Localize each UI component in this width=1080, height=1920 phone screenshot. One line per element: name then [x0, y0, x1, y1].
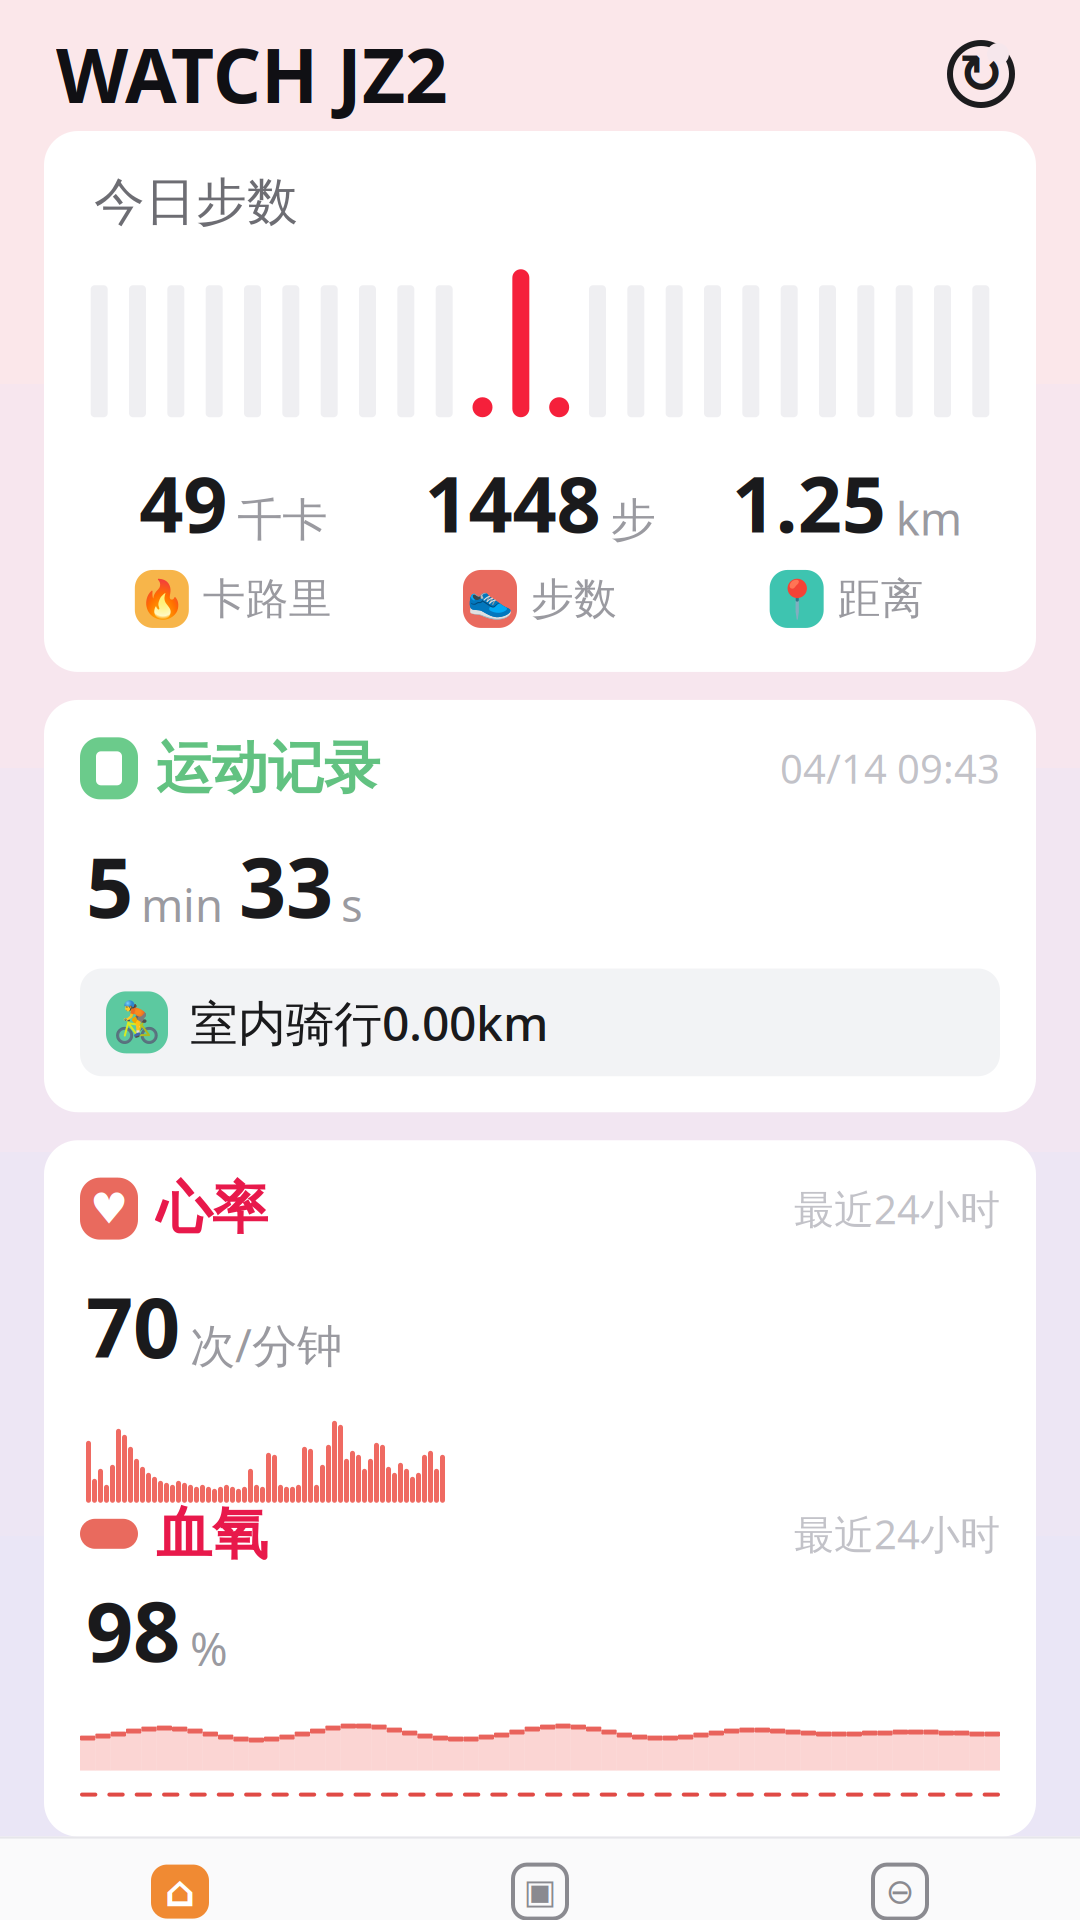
staticText: 血氧 [156, 1499, 268, 1568]
staticText: 📍 [774, 578, 820, 620]
button[interactable]: ⌂ [0, 1865, 360, 1920]
staticText: 👟 [467, 578, 513, 620]
button[interactable]: ⊖ [720, 1865, 1080, 1920]
staticText: ♥ [90, 1184, 128, 1233]
staticText: 距离 [838, 573, 924, 625]
staticText: 步 [610, 492, 655, 548]
staticText: 🚴 [112, 999, 162, 1045]
staticText: 今日步数 [94, 171, 298, 233]
staticText: s [341, 874, 363, 934]
staticText: 33 [239, 831, 333, 940]
staticText: 5 [86, 831, 133, 940]
staticText: 室内骑行0.00km [190, 990, 548, 1054]
staticText: ⌂ [164, 1867, 195, 1916]
staticText: 1448 [424, 451, 600, 554]
staticText: 49 [139, 451, 227, 554]
staticText: 步数 [531, 573, 617, 625]
staticText: 卡路里 [203, 573, 332, 625]
staticText: 1.25 [732, 451, 886, 554]
staticText: 04/14 09:43 [780, 742, 1000, 795]
button[interactable]: Refresh [938, 31, 1024, 117]
staticText: ▣ [523, 1872, 556, 1911]
staticText: 70 [86, 1271, 180, 1381]
staticText: 千卡 [237, 492, 327, 548]
staticText: 最近24小时 [794, 1507, 1000, 1560]
button[interactable]: ▣ [360, 1865, 720, 1920]
staticText: % [190, 1618, 228, 1679]
staticText: 运动记录 [156, 734, 380, 803]
staticText: ⊖ [885, 1872, 914, 1911]
staticText: ↻ [958, 44, 1003, 104]
staticText: WATCH JZ2 [56, 24, 448, 124]
staticText: 最近24小时 [794, 1182, 1000, 1235]
staticText: min [141, 874, 223, 934]
staticText: 次/分钟 [190, 1315, 342, 1375]
button[interactable]: 运动记录 [44, 700, 1036, 1112]
staticText: 🔥 [139, 578, 185, 620]
staticText: km [896, 488, 962, 548]
staticText: 心率 [156, 1174, 268, 1243]
staticText: 98 [86, 1575, 180, 1685]
